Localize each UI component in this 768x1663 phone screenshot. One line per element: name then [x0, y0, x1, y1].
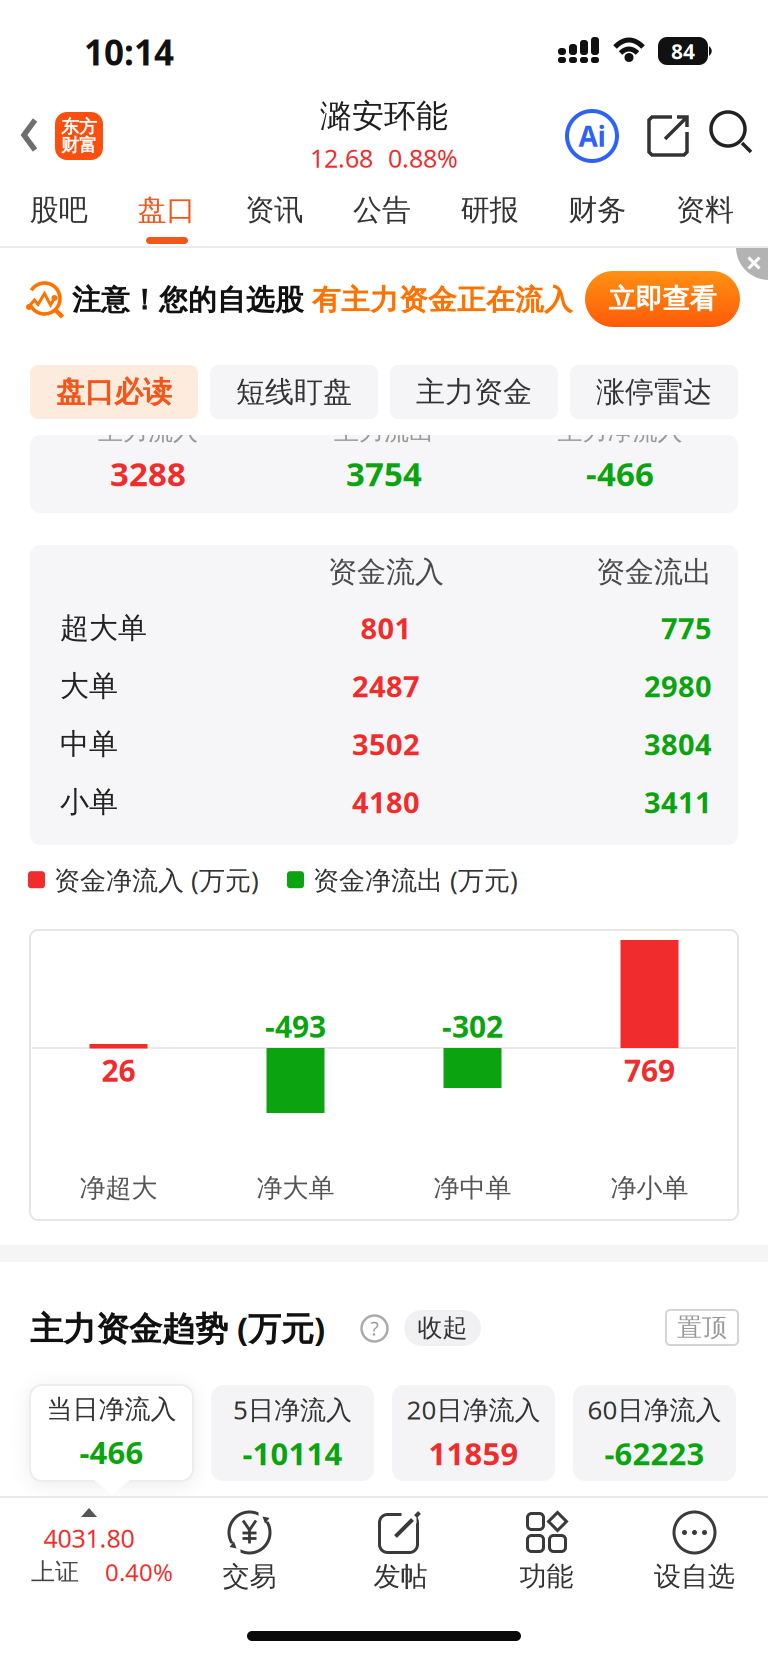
staticText: 主力流出 — [334, 415, 434, 447]
staticText: 2980 — [644, 666, 712, 706]
button[interactable]: 说明 — [361, 1315, 388, 1342]
button[interactable]: Close — [737, 248, 768, 278]
button[interactable]: Search — [0, 80, 42, 122]
staticText: 净超大 — [79, 1172, 157, 1204]
staticText: 置顶 — [677, 1312, 727, 1343]
staticText: 股吧 — [30, 192, 88, 228]
staticText: 26 — [101, 1050, 135, 1090]
staticText: 资金净流出 (万元) — [313, 862, 518, 897]
button[interactable]: 盘口必读 — [30, 365, 198, 419]
button[interactable]: 主力资金 — [390, 365, 558, 419]
staticText: 3502 — [352, 724, 420, 764]
staticText: 801 — [360, 608, 411, 648]
button[interactable]: 置顶 — [666, 1310, 738, 1345]
button[interactable]: 20日净流入 — [392, 1385, 555, 1481]
staticText: 净中单 — [433, 1172, 511, 1204]
staticText: 0.88% — [388, 141, 458, 175]
staticText: 超大单 — [60, 610, 147, 646]
button[interactable]: 东方财富 — [55, 112, 103, 160]
staticText: 交易 — [222, 1559, 276, 1593]
button[interactable]: 设自选 — [622, 1504, 767, 1600]
staticText: -466 — [79, 1431, 143, 1473]
staticText: 小单 — [60, 784, 118, 820]
staticText: 主力流入 — [98, 415, 198, 447]
staticText: 潞安环能 — [320, 96, 448, 136]
button[interactable]: 资料 — [651, 184, 759, 236]
staticText: 资金流出 — [596, 554, 712, 590]
button[interactable]: 收起 — [404, 1310, 481, 1346]
staticText: 上证 — [31, 1557, 79, 1587]
staticText: 0.40% — [105, 1556, 173, 1588]
staticText: -493 — [265, 1006, 326, 1046]
button[interactable]: 60日净流入 — [573, 1385, 736, 1481]
staticText: 功能 — [519, 1559, 573, 1593]
staticText: 资金净流入 (万元) — [54, 862, 259, 897]
staticText: 11859 — [428, 1432, 518, 1474]
staticText: 20日净流入 — [406, 1392, 540, 1427]
staticText: 3288 — [110, 451, 186, 496]
staticText: 公告 — [353, 192, 411, 228]
staticText: 净小单 — [610, 1172, 688, 1204]
staticText: 775 — [661, 608, 712, 648]
staticText: 主力资金趋势 (万元) — [30, 1305, 325, 1350]
staticText: 收起 — [417, 1312, 467, 1344]
staticText: 主力资金 — [416, 374, 532, 410]
staticText: 注意！您的自选股 — [72, 282, 304, 318]
staticText: 发帖 — [373, 1559, 427, 1593]
staticText: -466 — [586, 451, 654, 496]
staticText: 主力净流入 — [557, 415, 682, 447]
staticText: 涨停雷达 — [596, 374, 712, 410]
staticText: 3804 — [644, 724, 712, 764]
button[interactable]: 股吧 — [5, 184, 113, 236]
staticText: 3754 — [346, 451, 422, 496]
staticText: 10:14 — [84, 28, 174, 76]
staticText: 东方 — [61, 115, 97, 138]
button[interactable]: 财务 — [543, 184, 651, 236]
staticText: 立即查看 — [608, 282, 716, 316]
staticText: 中单 — [60, 726, 118, 762]
button[interactable]: 发帖 — [328, 1504, 473, 1600]
staticText: 设自选 — [654, 1559, 735, 1593]
staticText: 84 — [671, 37, 695, 65]
button[interactable]: 公告 — [328, 184, 436, 236]
staticText: ? — [370, 1316, 378, 1341]
staticText: 当日净流入 — [46, 1393, 176, 1426]
staticText: 盘口必读 — [56, 374, 172, 410]
staticText: 有主力资金正在流入 — [312, 282, 573, 318]
staticText: 5日净流入 — [233, 1392, 352, 1427]
button[interactable]: 研报 — [436, 184, 543, 236]
button[interactable]: 盘口 — [113, 184, 220, 236]
button[interactable]: 当日净流入 — [30, 1385, 193, 1481]
button[interactable]: 短线盯盘 — [210, 365, 378, 419]
button[interactable]: 资讯 — [220, 184, 328, 236]
staticText: 2487 — [352, 666, 420, 706]
staticText: 12.68 — [310, 141, 373, 175]
staticText: 资金流入 — [328, 554, 444, 590]
button[interactable]: 4031.80 — [0, 1498, 200, 1594]
button[interactable]: 5日净流入 — [211, 1385, 374, 1481]
staticText: Ai — [578, 117, 605, 155]
button[interactable]: Share — [0, 80, 44, 124]
button[interactable]: 功能 — [474, 1504, 619, 1600]
staticText: 短线盯盘 — [236, 374, 352, 410]
staticText: -302 — [442, 1006, 503, 1046]
staticText: 研报 — [461, 192, 519, 228]
staticText: -10114 — [242, 1432, 342, 1474]
button[interactable]: Ai — [0, 80, 54, 134]
staticText: 3411 — [644, 782, 712, 822]
staticText: 盘口 — [138, 192, 196, 228]
staticText: 4180 — [352, 782, 420, 822]
staticText: 4031.80 — [43, 1521, 134, 1555]
staticText: 60日净流入 — [587, 1392, 721, 1427]
button[interactable]: 涨停雷达 — [570, 365, 738, 419]
staticText: -62223 — [604, 1432, 704, 1474]
button[interactable]: 交易 — [177, 1504, 322, 1600]
staticText: 资料 — [676, 192, 734, 228]
staticText: 财务 — [568, 192, 626, 228]
staticText: 财富 — [61, 134, 97, 157]
staticText: 资讯 — [245, 192, 303, 228]
staticText: 净大单 — [256, 1172, 334, 1204]
button[interactable]: 立即查看 — [585, 271, 740, 327]
staticText: 大单 — [60, 668, 118, 704]
